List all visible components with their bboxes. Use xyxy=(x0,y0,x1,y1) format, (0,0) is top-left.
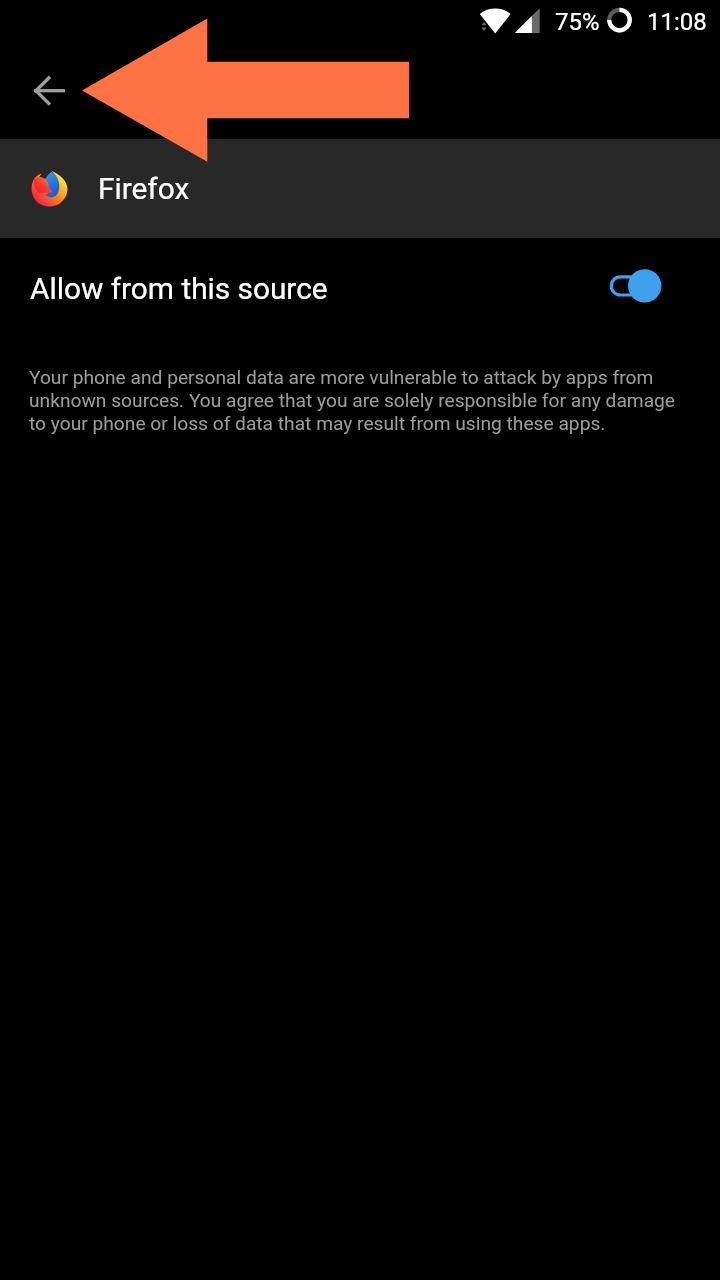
staticText: Firefox xyxy=(98,171,190,206)
staticText: 75% xyxy=(555,8,600,36)
staticText: Your phone and personal data are more vu… xyxy=(29,366,678,435)
staticText: Allow from this source xyxy=(30,271,328,306)
staticText: 11:08 xyxy=(647,8,707,36)
button[interactable]: Allow from this source toggle xyxy=(600,260,670,312)
button[interactable]: Allow from this source xyxy=(0,238,720,338)
button[interactable]: Navigate up xyxy=(25,66,73,114)
